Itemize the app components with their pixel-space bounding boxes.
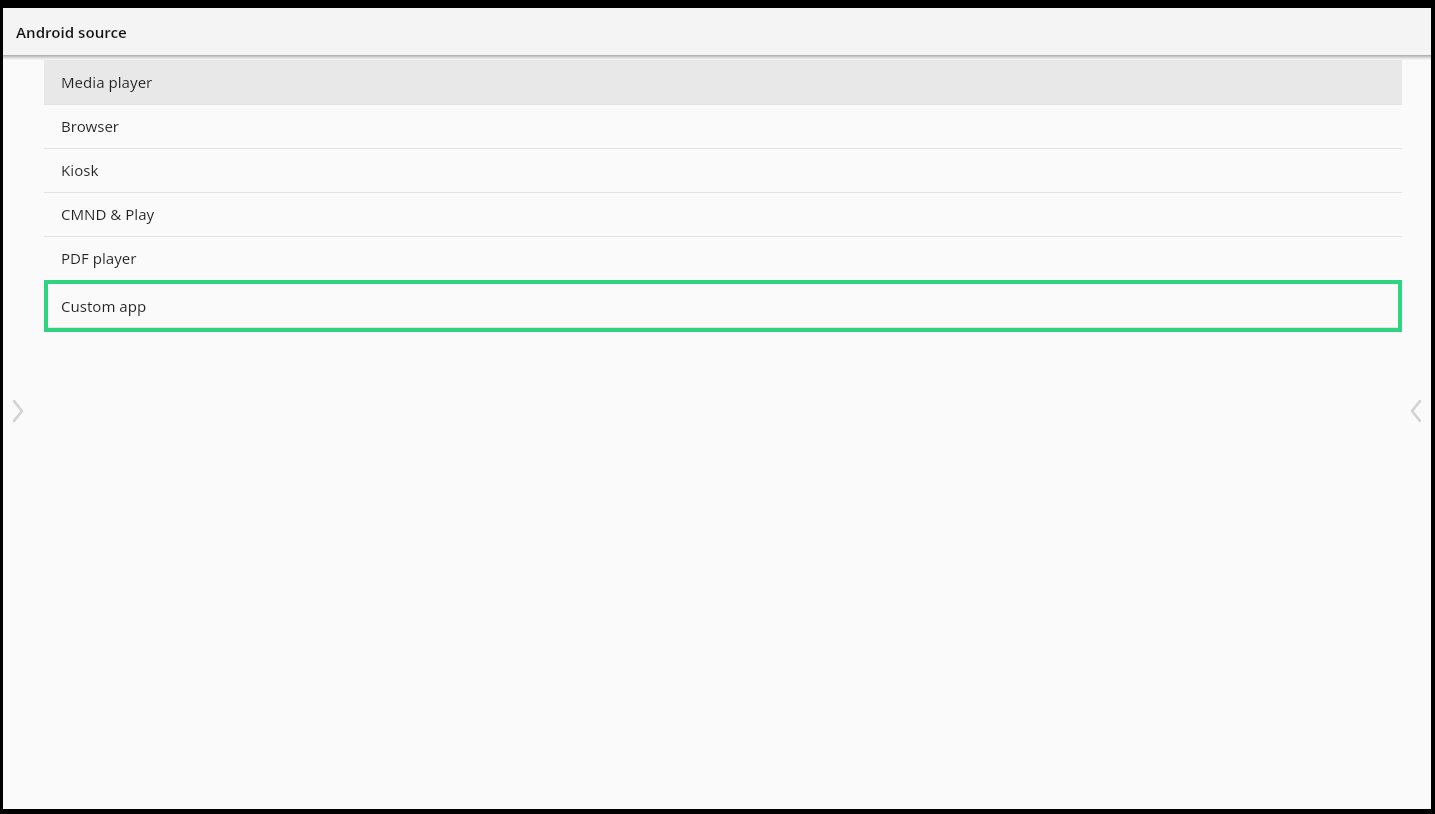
button[interactable]: Kiosk	[44, 148, 1402, 192]
staticText: Browser	[61, 116, 120, 136]
button[interactable]: Custom app	[48, 284, 1398, 328]
staticText: CMND & Play	[61, 204, 155, 224]
button[interactable]: PDF player	[44, 236, 1402, 280]
staticText: Custom app	[61, 296, 147, 316]
button[interactable]: Next page	[3, 389, 33, 433]
button[interactable]: Browser	[44, 104, 1402, 148]
staticText: Kiosk	[61, 160, 99, 180]
staticText: PDF player	[61, 248, 137, 268]
staticText: Media player	[61, 72, 153, 92]
button[interactable]: Previous page	[1401, 389, 1431, 433]
staticText: Android source	[16, 22, 127, 42]
button[interactable]: CMND & Play	[44, 192, 1402, 236]
button[interactable]: Media player	[44, 60, 1402, 104]
